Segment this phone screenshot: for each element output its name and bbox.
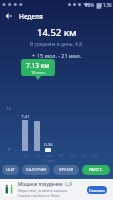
button[interactable]: Скачать [87,186,107,194]
staticText: В среднем в день: 4,8 [30,41,83,48]
staticText: 0 [8,147,11,153]
staticText: 21 [93,153,98,158]
staticText: 98% [85,2,95,8]
button[interactable]: Back [3,10,15,22]
staticText: Скачай стройность! Жми! [18,193,60,198]
staticText: Мощное похудение [18,181,63,187]
staticText: Жиры тают, остаются мышцы. [18,188,68,193]
staticText: 19 [70,153,75,158]
staticText: чет [46,153,52,158]
staticText: КАЛОРИИ [26,167,47,173]
staticText: 16 июл. [31,70,46,75]
button[interactable]: КАЛОРИИ [22,165,50,175]
staticText: 11:36 [100,2,112,8]
button[interactable]: ВРЕМЯ [53,165,79,175]
staticText: 7.41 [21,114,30,120]
staticText: 15 июл. - 21 июл. [37,52,82,59]
staticText: Неделя [19,12,43,21]
staticText: ВРЕМЯ [59,167,74,173]
staticText: AD [66,182,71,186]
staticText: 17 июл [42,158,55,163]
button[interactable]: РАССТ. [82,165,110,175]
staticText: 15 [23,153,28,158]
staticText: РАССТ. [89,167,103,173]
button[interactable]: ШАГ [2,165,19,175]
staticText: Скачать [89,188,105,193]
staticText: 14.52 км [37,26,77,39]
staticText: ШАГ [6,167,16,173]
staticText: 0.36 [44,142,53,148]
button[interactable]: 7.13 км [21,59,55,76]
button[interactable]: Мощное похудение [0,179,113,200]
staticText: 16 [35,153,40,158]
staticText: 18 [58,153,63,158]
staticText: 7.13 км [26,61,50,70]
staticText: 20 [82,153,87,158]
staticText: 10 [6,106,11,112]
